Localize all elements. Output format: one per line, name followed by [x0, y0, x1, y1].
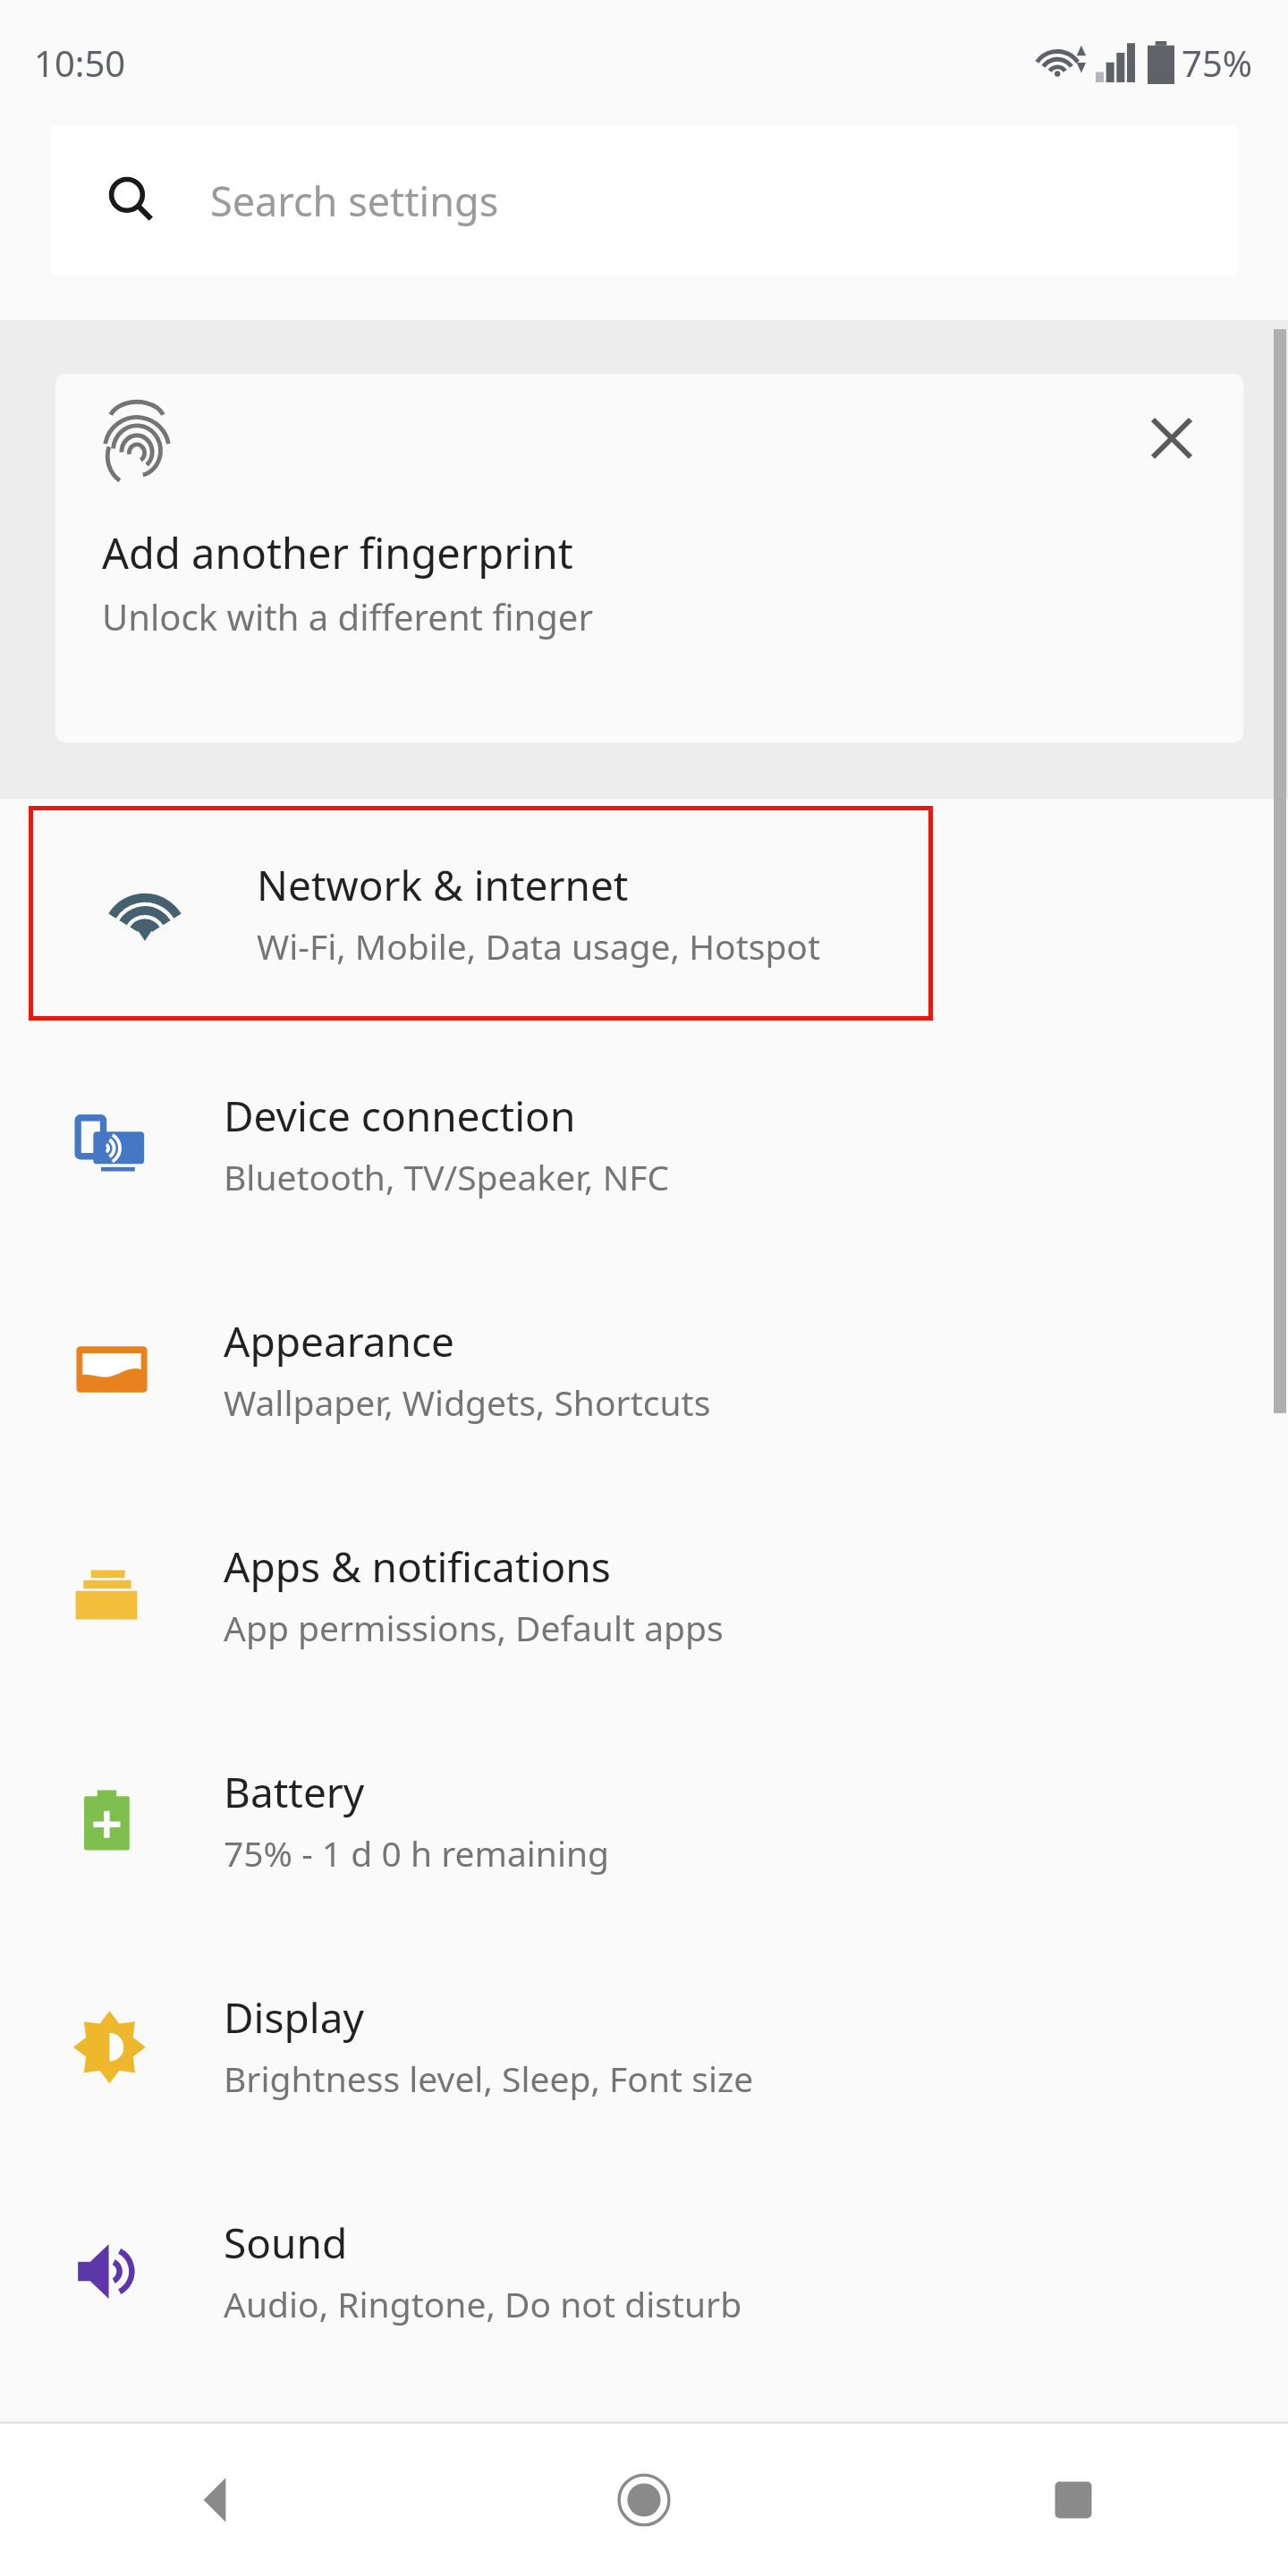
- button[interactable]: Network & internet: [33, 810, 928, 1016]
- staticText: Bluetooth, TV/Speaker, NFC: [224, 1153, 670, 1200]
- staticText: Unlock with a different finger: [102, 592, 593, 640]
- button[interactable]: Add another fingerprint: [55, 374, 1243, 742]
- button[interactable]: Device connection: [0, 1031, 1288, 1257]
- button[interactable]: Dismiss: [1134, 401, 1209, 476]
- button[interactable]: Appearance: [0, 1257, 1288, 1482]
- staticText: Apps & notifications: [224, 1538, 611, 1595]
- staticText: App permissions, Default apps: [224, 1604, 724, 1651]
- button[interactable]: Home: [429, 2424, 859, 2576]
- staticText: Search settings: [210, 174, 499, 228]
- button[interactable]: Apps & notifications: [0, 1482, 1288, 1707]
- button[interactable]: Sound: [0, 2158, 1288, 2384]
- staticText: Brightness level, Sleep, Font size: [224, 2055, 754, 2102]
- button[interactable]: Back: [0, 2424, 429, 2576]
- staticText: Wi-Fi, Mobile, Data usage, Hotspot: [257, 922, 821, 970]
- button[interactable]: Battery: [0, 1707, 1288, 1933]
- other: Search: [106, 175, 157, 225]
- staticText: Wallpaper, Widgets, Shortcuts: [224, 1378, 711, 1426]
- staticText: Device connection: [224, 1088, 576, 1144]
- staticText: Add another fingerprint: [102, 524, 573, 581]
- button[interactable]: Recents: [859, 2424, 1288, 2576]
- staticText: Sound: [224, 2215, 348, 2271]
- staticText: 75%: [1182, 38, 1252, 87]
- staticText: Audio, Ringtone, Do not disturb: [224, 2280, 742, 2327]
- staticText: Display: [224, 1989, 364, 2046]
- staticText: Appearance: [224, 1313, 455, 1369]
- staticText: Network & internet: [257, 857, 629, 913]
- button[interactable]: Search: [51, 125, 1238, 275]
- button[interactable]: Display: [0, 1933, 1288, 2158]
- staticText: Battery: [224, 1764, 365, 1820]
- staticText: 75% - 1 d 0 h remaining: [224, 1829, 610, 1877]
- staticText: 10:50: [34, 38, 126, 87]
